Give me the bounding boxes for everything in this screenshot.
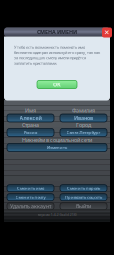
button[interactable]: Закрыть (102, 27, 112, 37)
staticText: Привязать соцсеть (65, 194, 102, 200)
staticText: Сменить пароль (67, 185, 100, 191)
staticText: Сменить имя (17, 185, 44, 191)
staticText: Алексей (19, 114, 41, 122)
button[interactable]: Удалить аккаунт (7, 203, 54, 210)
button[interactable]: Россия (7, 128, 54, 136)
button[interactable]: Санкт-Петербург (60, 128, 107, 136)
staticText: ✕ (104, 29, 110, 36)
staticText: Фамилия (72, 107, 95, 114)
staticText: У тебя есть возможность поменять имя бес… (14, 44, 100, 66)
button[interactable]: Сменить пароль (60, 185, 107, 192)
staticText: Выйти (76, 203, 91, 210)
button[interactable]: Привязать соцсеть (60, 194, 107, 201)
staticText: СМЕНА ИМЕНИ (37, 28, 77, 36)
button[interactable]: Выйти (60, 203, 107, 210)
staticText: Страна (22, 121, 39, 129)
staticText: Санкт-Петербург (66, 130, 100, 135)
staticText: ОК (53, 81, 61, 88)
button[interactable]: Сменить имя (7, 185, 54, 192)
button[interactable]: Сменить почту (7, 194, 54, 201)
staticText: Город (76, 121, 91, 129)
button[interactable]: Иванов (60, 114, 107, 122)
button[interactable]: ОК (37, 80, 77, 88)
staticText: Никнейм в социальной сети (22, 136, 92, 144)
button[interactable]: Изменить (7, 143, 107, 151)
staticText: Сменить почту (15, 194, 45, 200)
staticText: Изменить (47, 145, 67, 150)
button[interactable]: Алексей (7, 114, 54, 122)
staticText: Иванов (74, 114, 93, 122)
staticText: Удалить аккаунт (10, 203, 51, 210)
staticText: Имя (25, 107, 36, 114)
staticText: Россия (24, 130, 37, 135)
staticText: версия 1.4.2 (build 218) (37, 212, 76, 217)
